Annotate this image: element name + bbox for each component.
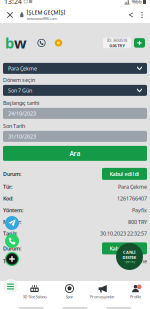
button[interactable]: 31/10/2023 xyxy=(3,131,147,142)
staticText: Son 7 Gün xyxy=(8,87,32,94)
staticText: Kabul edildi xyxy=(109,170,139,177)
staticText: Durum: xyxy=(3,245,21,252)
staticText: Yöntem: xyxy=(3,207,23,214)
button[interactable]: Share xyxy=(124,7,137,23)
staticText: Kabul edildi xyxy=(109,245,139,252)
staticText: 24/10/2023 xyxy=(8,110,36,117)
button[interactable]: Profile xyxy=(124,281,146,303)
button[interactable]: 3D Slot Salonu xyxy=(18,281,50,303)
staticText: Payfix xyxy=(132,207,147,214)
staticText: CANLI xyxy=(123,249,136,255)
button[interactable]: Support xyxy=(37,38,46,47)
staticText: 30.10.2023 22:32:57 xyxy=(100,230,147,237)
staticText: 1261766407 xyxy=(117,195,147,202)
button[interactable]: Bonuses xyxy=(54,38,63,47)
staticText: 3D Slot Salonu xyxy=(22,294,46,299)
button[interactable]: Ara xyxy=(3,146,147,161)
staticText: Başlangıç tarihi xyxy=(3,99,39,106)
staticText: 0.06 TRY xyxy=(109,43,124,48)
staticText: 800 TRY xyxy=(128,218,147,225)
staticText: Spor xyxy=(65,294,73,299)
staticText: w xyxy=(14,33,27,53)
staticText: Para Çekme xyxy=(118,183,147,190)
staticText: Tür: xyxy=(3,183,12,190)
staticText: Durum: xyxy=(3,170,21,177)
button[interactable]: Spor xyxy=(58,281,80,303)
staticText: Miktar: xyxy=(3,218,21,225)
staticText: İŞLEM GEÇMİŞİ xyxy=(26,9,65,16)
staticText: b xyxy=(5,33,14,53)
button[interactable]: Kabul edildi xyxy=(102,242,147,254)
staticText: • çevrimiçi xyxy=(123,260,135,263)
button[interactable]: 24/10/2023 xyxy=(3,108,147,119)
staticText: ID: 3692518 xyxy=(107,37,127,43)
button[interactable]: Kabul edildi xyxy=(102,168,147,180)
staticText: Profile xyxy=(130,294,141,299)
button[interactable]: Close xyxy=(3,7,17,23)
staticText: %66 xyxy=(131,0,141,5)
staticText: Tür: xyxy=(3,258,12,265)
button[interactable]: b xyxy=(5,33,27,53)
button[interactable]: More contacts xyxy=(5,252,19,266)
button[interactable]: Deposit xyxy=(134,38,145,48)
button[interactable]: ID: 3692518 xyxy=(103,38,131,48)
staticText: Para Çekme xyxy=(118,258,147,265)
staticText: 13:24 xyxy=(4,0,22,6)
staticText: DESTEK xyxy=(122,255,136,260)
button[interactable]: WhatsApp xyxy=(5,234,19,248)
staticText: Kod: xyxy=(3,195,13,202)
staticText: Dönem seçin xyxy=(3,76,35,83)
staticText: betwoonx888.com xyxy=(26,16,57,21)
button[interactable]: Promosyonlar xyxy=(88,281,116,303)
staticText: Tarih: xyxy=(3,230,17,237)
staticText: Para Çekme xyxy=(8,65,37,72)
staticText: 31/10/2023 xyxy=(8,133,36,140)
button[interactable]: Para Çekme xyxy=(3,63,147,74)
button[interactable]: Live support xyxy=(116,243,143,270)
staticText: Son Tarih xyxy=(3,122,25,129)
button[interactable]: More options xyxy=(137,7,147,23)
staticText: Ara xyxy=(69,149,80,158)
button[interactable]: Telegram xyxy=(5,216,19,230)
button[interactable]: Menu xyxy=(3,279,18,294)
staticText: Promosyonlar xyxy=(90,294,115,299)
button[interactable]: Son 7 Gün xyxy=(3,85,147,96)
